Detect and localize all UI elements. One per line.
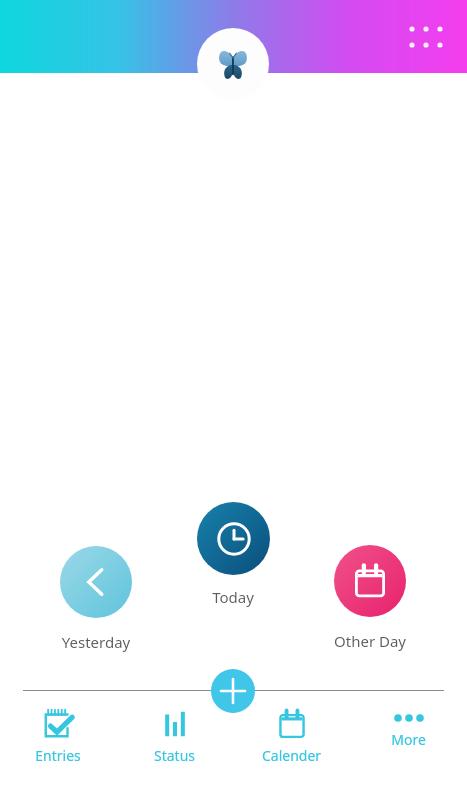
staticText: Calender bbox=[233, 746, 350, 765]
staticText: Yesterday bbox=[36, 632, 156, 652]
button[interactable]: Apps menu bbox=[398, 16, 454, 58]
button[interactable]: Calender bbox=[233, 705, 350, 765]
staticText: Today bbox=[173, 587, 293, 607]
staticText: More bbox=[350, 730, 467, 749]
staticText: Other Day bbox=[310, 631, 430, 651]
button[interactable]: Entries bbox=[0, 705, 116, 765]
button[interactable]: Other Day bbox=[310, 545, 430, 651]
button[interactable]: Add entry bbox=[211, 669, 255, 713]
button[interactable]: Today bbox=[173, 502, 293, 607]
button[interactable]: More bbox=[350, 705, 467, 749]
staticText: Entries bbox=[0, 746, 116, 765]
button[interactable]: Status bbox=[116, 705, 233, 765]
button[interactable]: Yesterday bbox=[36, 546, 156, 652]
staticText: Status bbox=[116, 746, 233, 765]
button[interactable]: App logo bbox=[197, 28, 269, 100]
